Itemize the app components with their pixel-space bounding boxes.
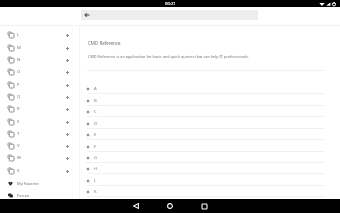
staticText: S <box>17 119 20 125</box>
staticText: R <box>17 106 20 112</box>
staticText: B <box>94 98 97 104</box>
button[interactable]: X <box>0 165 78 177</box>
staticText: T <box>17 131 20 137</box>
button[interactable]: O <box>0 66 78 78</box>
button[interactable]: D <box>79 118 325 129</box>
staticText: My Favorite <box>17 181 39 186</box>
button[interactable]: Forum <box>0 189 78 201</box>
button[interactable]: P <box>0 79 78 91</box>
staticText: E <box>94 132 97 138</box>
staticText: H <box>94 166 98 172</box>
staticText: Q <box>17 94 21 100</box>
staticText: A <box>94 86 97 92</box>
button[interactable]: C <box>79 106 325 117</box>
staticText: N <box>17 57 21 63</box>
staticText: 00:21 <box>165 1 176 7</box>
button[interactable]: Home <box>153 199 187 213</box>
button[interactable]: N <box>0 54 78 66</box>
button[interactable]: G <box>79 152 325 163</box>
button[interactable]: W <box>0 152 78 164</box>
button[interactable]: E <box>79 129 325 140</box>
staticText: M <box>17 45 21 51</box>
button[interactable]: My Favorite <box>0 177 78 189</box>
staticText: L <box>17 32 20 38</box>
button[interactable]: S <box>0 116 78 128</box>
button[interactable]: Back <box>119 199 153 213</box>
button[interactable]: R <box>0 103 78 115</box>
staticText: P <box>17 82 20 88</box>
staticText: G <box>94 155 98 161</box>
staticText: V <box>17 143 20 149</box>
staticText: X <box>17 168 20 174</box>
staticText: F <box>94 144 97 150</box>
staticText: CMD Reference is an application for basi… <box>88 54 249 59</box>
button[interactable]: I <box>79 175 325 186</box>
button[interactable]: T <box>0 128 78 140</box>
staticText: Forum <box>17 193 30 198</box>
button[interactable]: M <box>0 42 78 54</box>
staticText: CMD Reference <box>88 40 121 46</box>
button[interactable]: Q <box>0 91 78 103</box>
staticText: D <box>94 121 98 127</box>
button[interactable]: H <box>79 163 325 174</box>
staticText: O <box>17 69 21 75</box>
button[interactable]: V <box>0 140 78 152</box>
staticText: I <box>94 178 96 184</box>
staticText: K <box>94 189 97 195</box>
button[interactable]: Back <box>81 10 93 20</box>
button[interactable]: K <box>79 186 325 197</box>
button[interactable]: F <box>79 141 325 152</box>
button[interactable]: Recent apps <box>187 199 221 213</box>
staticText: C <box>94 109 97 115</box>
staticText: W <box>17 155 21 161</box>
button[interactable]: B <box>79 95 325 106</box>
button[interactable]: L <box>0 29 78 41</box>
button[interactable]: A <box>79 83 325 94</box>
